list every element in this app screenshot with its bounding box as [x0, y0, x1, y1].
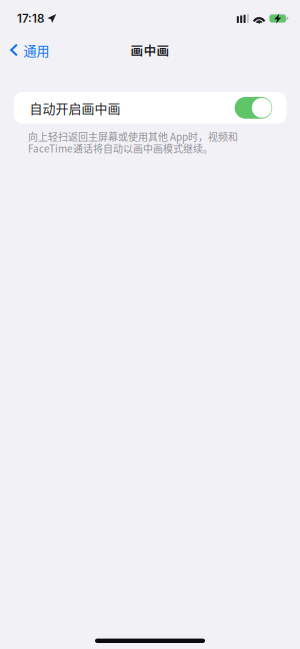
staticText: 向上轻扫返回主屏幕或使用其他 App时，视频和 — [28, 129, 238, 144]
staticText: FaceTime通话将自动以画中画模式继续。 — [28, 141, 213, 155]
staticText: 自动开启画中画 — [29, 98, 120, 117]
staticText: 17:18 — [17, 11, 44, 25]
staticText: 画中画 — [130, 41, 169, 59]
button[interactable]: 通用 — [0, 37, 57, 63]
staticText: 通用 — [23, 41, 49, 59]
button[interactable]: 自动开启画中画 — [14, 92, 286, 124]
